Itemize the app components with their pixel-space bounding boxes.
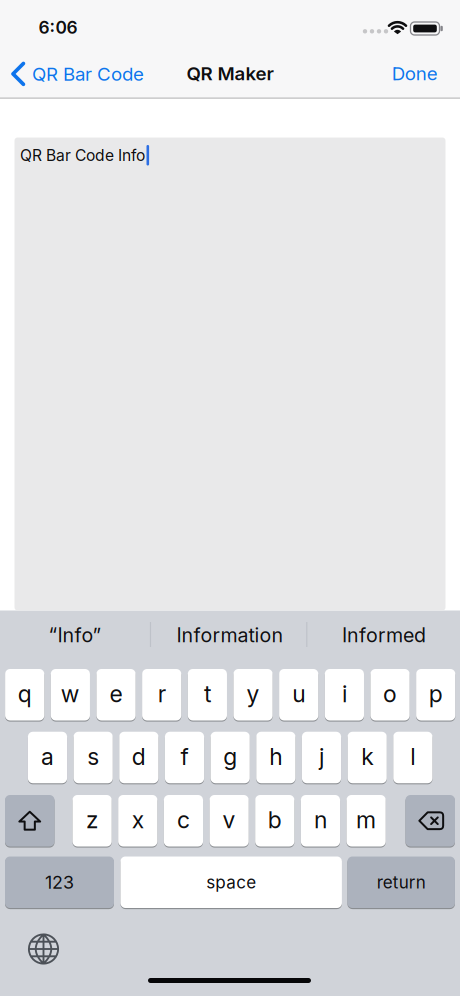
button[interactable]: space [120,855,342,909]
button[interactable]: w [51,668,90,721]
button[interactable]: Shift [5,794,54,847]
button[interactable]: l [393,731,432,784]
staticText: u [292,680,305,708]
button[interactable]: e [96,668,136,721]
staticText: s [87,742,99,770]
button[interactable]: 123 [5,855,114,909]
button[interactable]: b [255,794,294,847]
button[interactable]: return [347,855,455,909]
staticText: o [383,680,397,708]
button[interactable]: n [301,794,340,847]
button[interactable]: i [325,668,364,721]
staticText: QR Bar Code Info [20,146,145,165]
staticText: d [132,742,146,770]
staticText: g [223,742,237,770]
button[interactable]: Next keyboard [21,927,65,971]
staticText: p [429,680,443,708]
staticText: QR Bar Code [32,63,144,85]
staticText: e [109,680,122,708]
button[interactable]: QR Bar Code [11,59,144,89]
button[interactable]: r [142,668,181,721]
staticText: t [204,680,211,708]
button[interactable]: d [119,731,158,784]
staticText: Informed [342,623,426,647]
staticText: return [377,872,426,892]
button[interactable]: y [233,668,273,721]
staticText: Done [392,62,438,85]
button[interactable]: g [211,731,250,784]
button[interactable]: k [348,731,387,784]
button[interactable]: z [72,794,112,847]
staticText: l [410,742,415,770]
button[interactable]: h [256,731,295,784]
staticText: w [61,680,80,708]
button[interactable]: QR code text [14,137,445,610]
button[interactable]: x [118,794,157,847]
staticText: f [180,742,188,770]
button[interactable]: j [302,731,341,784]
staticText: b [268,806,282,834]
staticText: 123 [45,871,74,893]
button[interactable]: m [346,794,386,847]
staticText: y [247,680,260,708]
button[interactable]: Informed [311,611,457,659]
button[interactable]: c [164,794,203,847]
button[interactable]: a [28,731,67,784]
button[interactable]: v [209,794,249,847]
button[interactable]: o [370,668,410,721]
staticText: h [269,742,282,770]
staticText: i [342,680,347,708]
button[interactable]: q [5,668,44,721]
button[interactable]: Done [392,58,438,88]
button[interactable]: f [165,731,204,784]
staticText: space [206,872,256,892]
staticText: c [177,806,190,834]
button[interactable]: u [279,668,318,721]
button[interactable]: Information [155,611,305,659]
button[interactable]: s [74,731,113,784]
staticText: 6:06 [38,17,77,38]
button[interactable]: “Info” [2,611,148,659]
button[interactable]: Delete [405,794,455,847]
staticText: n [314,806,327,834]
staticText: z [86,806,98,834]
staticText: k [361,742,373,770]
staticText: j [319,742,324,770]
staticText: m [356,806,376,834]
staticText: v [223,806,236,834]
staticText: r [158,680,166,708]
staticText: “Info” [48,623,101,647]
staticText: q [18,680,32,708]
button[interactable]: t [188,668,227,721]
staticText: x [132,806,144,834]
staticText: a [41,742,54,770]
staticText: Information [176,623,283,647]
staticText: QR Maker [186,62,273,85]
button[interactable]: p [416,668,455,721]
